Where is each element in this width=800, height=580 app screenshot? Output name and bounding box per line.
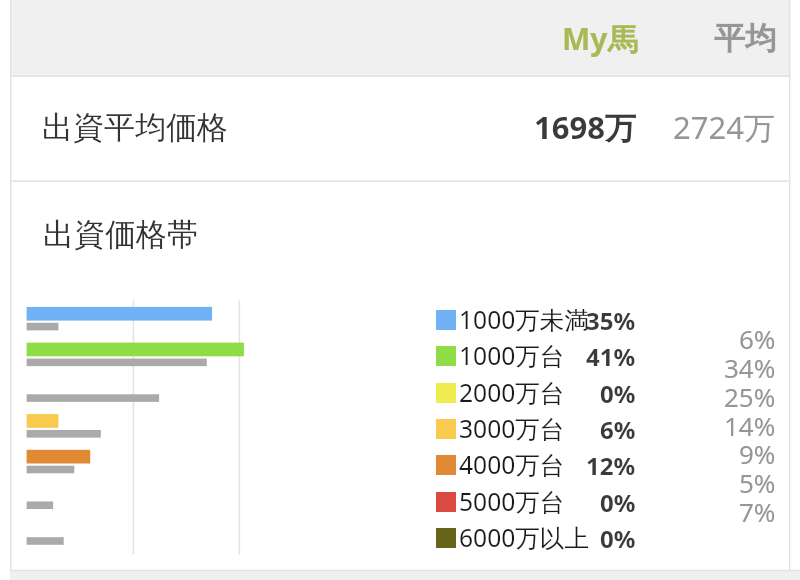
button[interactable]: My馬: [524, 0, 675, 76]
staticText: 出資価格帯: [43, 215, 198, 254]
button[interactable]: 平均: [678, 0, 800, 76]
button[interactable]: 4000万台: [436, 443, 636, 487]
staticText: 4000万台: [459, 448, 565, 482]
other: 出資価格帯の棒グラフ: [0, 0, 800, 580]
staticText: 41%: [586, 340, 636, 373]
staticText: 3000万台: [459, 412, 565, 446]
staticText: 1000万台: [459, 339, 565, 373]
staticText: 34%: [724, 350, 776, 385]
staticText: 0%: [600, 486, 636, 519]
staticText: 6%: [600, 413, 636, 446]
staticText: 平均: [714, 19, 776, 58]
staticText: 6%: [739, 321, 776, 356]
staticText: 9%: [739, 436, 776, 471]
staticText: 5%: [739, 465, 776, 500]
staticText: 35%: [586, 304, 636, 337]
button[interactable]: 6000万以上: [436, 516, 636, 560]
staticText: 1698万: [534, 106, 636, 148]
button[interactable]: 出資平均価格: [11, 77, 790, 181]
button[interactable]: 3000万台: [436, 407, 636, 451]
staticText: 0%: [600, 522, 636, 555]
staticText: 1000万未満: [459, 303, 590, 337]
staticText: 14%: [724, 408, 776, 443]
button[interactable]: 5000万台: [436, 480, 636, 524]
staticText: 7%: [739, 494, 776, 529]
button[interactable]: 1000万台: [436, 334, 636, 378]
staticText: 0%: [600, 377, 636, 410]
button[interactable]: 1000万未満: [436, 298, 636, 342]
staticText: 2000万台: [459, 376, 565, 410]
staticText: My馬: [562, 18, 638, 59]
staticText: 6000万以上: [459, 521, 590, 555]
staticText: 2724万: [673, 106, 775, 148]
staticText: 出資平均価格: [42, 108, 228, 147]
staticText: 12%: [586, 449, 636, 482]
button[interactable]: 2000万台: [436, 371, 636, 415]
staticText: 25%: [724, 379, 776, 414]
staticText: 5000万台: [459, 485, 565, 519]
